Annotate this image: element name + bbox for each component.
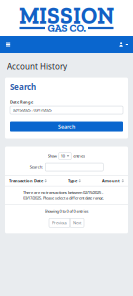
- staticText: Account History: [7, 61, 67, 72]
- staticText: Showing 0 to 0 of 0 entries: [44, 208, 88, 214]
- button[interactable]: Search: [10, 122, 123, 132]
- staticText: Type: [68, 178, 77, 183]
- staticText: Date Range: [10, 99, 33, 104]
- staticText: Search: [58, 123, 75, 130]
- staticText: GAS CO.: [47, 22, 85, 34]
- staticText: Amount: [102, 178, 120, 183]
- staticText: Search: [10, 82, 36, 92]
- staticText: 10: [61, 153, 65, 159]
- staticText: Show: [48, 153, 57, 159]
- staticText: There are no transactions between 02/15/…: [23, 190, 104, 200]
- staticText: 02/15/2025 - 03/17/2025: [12, 107, 51, 113]
- button[interactable]: Account: [115, 37, 133, 52]
- button[interactable]: Previous: [49, 218, 70, 227]
- staticText: Previous: [52, 220, 67, 225]
- staticText: Transaction Date: [9, 178, 43, 183]
- staticText: MISSION: [19, 2, 114, 30]
- staticText: entries: [73, 153, 85, 159]
- staticText: Next: [73, 220, 81, 225]
- button[interactable]: Next: [70, 218, 84, 227]
- staticText: Search:: [30, 164, 43, 170]
- button[interactable]: Menu: [0, 37, 15, 51]
